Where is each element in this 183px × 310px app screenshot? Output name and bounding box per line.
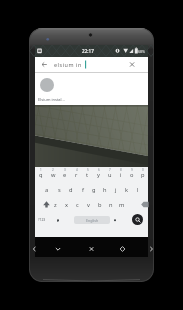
staticText: h	[103, 186, 107, 194]
staticText: 8	[120, 168, 122, 172]
staticText: j	[115, 186, 117, 194]
staticText: z	[54, 201, 57, 209]
staticText: k	[125, 186, 129, 194]
staticText: 2	[52, 168, 54, 172]
staticText: b	[98, 201, 102, 209]
staticText: 0	[142, 168, 144, 172]
button[interactable]: elsium in	[35, 57, 148, 72]
button[interactable]	[85, 242, 99, 256]
staticText: y	[97, 171, 100, 179]
staticText: English	[86, 218, 99, 223]
button[interactable]: u	[104, 169, 115, 180]
staticText: x	[65, 201, 69, 209]
staticText: d	[69, 186, 73, 194]
staticText: l	[137, 186, 139, 194]
button[interactable]: z	[50, 199, 61, 210]
staticText: q	[39, 171, 43, 179]
button[interactable]: o	[126, 169, 137, 180]
staticText: s	[58, 186, 61, 194]
staticText: 22:17	[82, 48, 94, 54]
button[interactable]: x	[61, 199, 72, 210]
staticText: f	[82, 186, 84, 194]
button[interactable]: t	[82, 169, 93, 180]
staticText: r	[75, 171, 78, 179]
staticText: Elsium instal...	[38, 97, 65, 102]
staticText: 5	[87, 168, 89, 172]
button[interactable]: h	[99, 184, 110, 195]
staticText: e	[63, 171, 67, 179]
button[interactable]: i	[115, 169, 126, 180]
button[interactable]	[53, 214, 63, 225]
staticText: 6	[98, 168, 100, 172]
staticText: 9	[131, 168, 133, 172]
button[interactable]: Elsium instal...	[35, 73, 148, 105]
button[interactable]: ?123	[36, 214, 47, 225]
button[interactable]: f	[77, 184, 88, 195]
button[interactable]: a	[41, 184, 53, 195]
staticText: 3	[64, 168, 66, 172]
button[interactable]: l	[132, 184, 143, 195]
staticText: v	[87, 201, 90, 209]
staticText: i	[120, 171, 122, 179]
button[interactable]: r	[71, 169, 82, 180]
button[interactable]: c	[72, 199, 83, 210]
staticText: 4	[76, 168, 78, 172]
staticText: 1	[40, 168, 42, 172]
staticText: 7	[109, 168, 111, 172]
button[interactable]	[116, 242, 130, 256]
staticText: ?123	[38, 217, 46, 222]
button[interactable]: m	[116, 199, 127, 210]
staticText: g	[92, 186, 96, 194]
staticText: c	[76, 201, 79, 209]
staticText: m	[119, 201, 125, 209]
staticText: 68%	[138, 49, 146, 54]
button[interactable]: n	[105, 199, 116, 210]
button[interactable]: s	[53, 184, 65, 195]
button[interactable]: q	[35, 169, 47, 180]
button[interactable]: y	[93, 169, 104, 180]
staticText: elsium in	[54, 61, 82, 68]
button[interactable]: d	[65, 184, 77, 195]
button[interactable]: j	[110, 184, 121, 195]
button[interactable]	[51, 242, 65, 256]
button[interactable]: k	[121, 184, 132, 195]
button[interactable]	[110, 214, 120, 225]
button[interactable]	[132, 214, 143, 225]
button[interactable]: b	[94, 199, 105, 210]
staticText: w	[51, 171, 56, 179]
button[interactable]: w	[47, 169, 59, 180]
staticText: a	[45, 186, 49, 194]
button[interactable]: English	[74, 216, 110, 224]
button[interactable]: g	[88, 184, 99, 195]
button[interactable]: p	[137, 169, 148, 180]
button[interactable]: v	[83, 199, 94, 210]
staticText: u	[108, 171, 112, 179]
staticText: p	[141, 171, 145, 179]
button[interactable]: e	[59, 169, 71, 180]
staticText: t	[86, 171, 89, 179]
staticText: n	[109, 201, 113, 209]
staticText: o	[130, 171, 134, 179]
